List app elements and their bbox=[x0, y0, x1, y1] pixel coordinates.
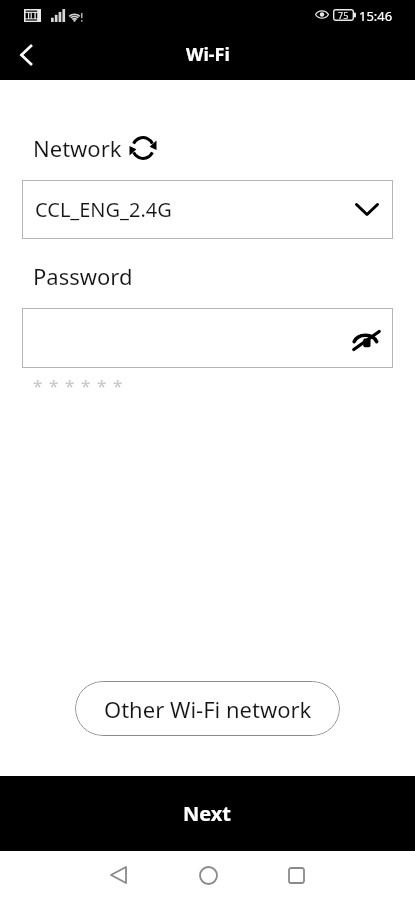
button[interactable]: Back bbox=[94, 851, 142, 899]
button[interactable]: Recents bbox=[272, 851, 320, 899]
button[interactable]: Show password bbox=[22, 308, 393, 368]
staticText: * bbox=[65, 374, 81, 397]
staticText: Next bbox=[183, 800, 232, 827]
button[interactable]: Other Wi-Fi network bbox=[75, 681, 340, 736]
staticText: CCL_ENG_2.4G bbox=[35, 196, 172, 223]
staticText: * bbox=[33, 374, 49, 397]
staticText: * bbox=[49, 374, 65, 397]
staticText: 75 bbox=[338, 9, 349, 21]
staticText: Password bbox=[33, 261, 133, 291]
button[interactable]: Show password bbox=[349, 323, 383, 357]
staticText: Other Wi-Fi network bbox=[104, 694, 312, 724]
staticText: Network bbox=[33, 133, 122, 163]
button[interactable]: Back bbox=[6, 35, 46, 75]
staticText: * bbox=[97, 374, 113, 397]
staticText: * bbox=[113, 374, 129, 397]
button[interactable]: Home bbox=[184, 851, 232, 899]
button[interactable]: Refresh bbox=[129, 134, 157, 162]
button[interactable]: CCL_ENG_2.4G bbox=[22, 180, 393, 239]
staticText: Wi-Fi bbox=[186, 42, 230, 67]
button[interactable]: Next bbox=[0, 776, 415, 851]
staticText: * bbox=[81, 374, 97, 397]
staticText: 15:46 bbox=[359, 7, 393, 25]
